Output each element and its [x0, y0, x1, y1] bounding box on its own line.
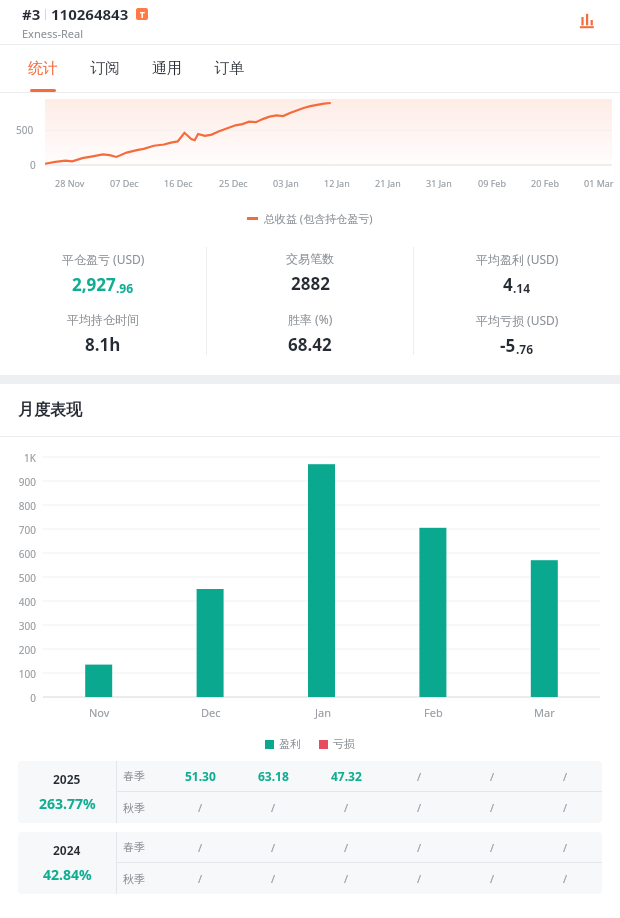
staticText: 21 Jan	[375, 177, 401, 189]
staticText: /	[344, 800, 349, 815]
staticText: 800	[18, 499, 36, 513]
staticText: 28 Nov	[55, 177, 85, 189]
staticText: /	[344, 871, 349, 886]
staticText: 03 Jan	[273, 177, 299, 189]
staticText: 500	[16, 123, 34, 137]
staticText: Nov	[89, 705, 110, 720]
staticText: T	[140, 9, 145, 20]
staticText: 42.84%	[43, 865, 92, 884]
staticText: 2,927	[72, 273, 116, 296]
staticText: 263.77%	[39, 794, 96, 813]
staticText: 2882	[291, 272, 330, 295]
button[interactable]: 2024	[18, 832, 602, 894]
staticText: /	[271, 800, 276, 815]
staticText: 51.30	[185, 768, 216, 784]
staticText: .96	[116, 280, 134, 296]
staticText: 盈利	[279, 737, 301, 751]
staticText: 交易笔数	[286, 251, 334, 266]
staticText: 100	[18, 667, 36, 681]
staticText: Feb	[424, 705, 443, 720]
staticText: /	[490, 800, 495, 815]
staticText: 平均盈利 (USD)	[476, 251, 559, 267]
staticText: 01 Mar	[584, 177, 614, 189]
staticText: 2024	[53, 842, 81, 858]
staticText: .14	[513, 280, 531, 296]
staticText: 平仓盈亏 (USD)	[62, 251, 145, 267]
button[interactable]: 通用	[136, 45, 198, 92]
staticText: Jan	[315, 705, 331, 720]
staticText: /	[417, 871, 422, 886]
staticText: /	[563, 800, 568, 815]
staticText: /	[490, 769, 495, 784]
staticText: 通用	[152, 59, 182, 78]
staticText: 秋季	[123, 801, 145, 815]
staticText: 订单	[214, 59, 244, 78]
staticText: 0	[30, 691, 36, 705]
button[interactable]: Chart view	[572, 6, 602, 36]
button[interactable]: 订阅	[74, 45, 136, 92]
button[interactable]: 订单	[198, 45, 260, 92]
staticText: /	[563, 769, 568, 784]
staticText: 平均持仓时间	[67, 312, 139, 327]
staticText: 500	[18, 571, 36, 585]
staticText: /	[198, 840, 203, 855]
staticText: 12 Jan	[324, 177, 350, 189]
staticText: 07 Dec	[110, 177, 139, 189]
staticText: 63.18	[258, 768, 289, 784]
staticText: 600	[18, 547, 36, 561]
staticText: -5	[500, 334, 516, 357]
staticText: 200	[18, 643, 36, 657]
staticText: 900	[18, 475, 36, 489]
staticText: 统计	[28, 59, 58, 78]
staticText: 胜率 (%)	[288, 311, 333, 327]
staticText: 8.1h	[85, 333, 121, 356]
staticText: /	[490, 871, 495, 886]
button[interactable]: 2025	[18, 761, 602, 823]
staticText: /	[344, 840, 349, 855]
staticText: 4	[503, 273, 513, 296]
staticText: 月度表现	[18, 400, 82, 420]
staticText: 20 Feb	[531, 177, 559, 189]
staticText: /	[198, 871, 203, 886]
staticText: /	[198, 800, 203, 815]
staticText: /	[417, 800, 422, 815]
staticText: 09 Feb	[478, 177, 506, 189]
staticText: #3	[22, 4, 41, 24]
staticText: 春季	[123, 769, 145, 783]
staticText: /	[417, 769, 422, 784]
staticText: 25 Dec	[219, 177, 248, 189]
staticText: 16 Dec	[164, 177, 193, 189]
staticText: 68.42	[288, 333, 332, 356]
staticText: 1K	[24, 451, 36, 465]
staticText: /	[271, 871, 276, 886]
staticText: 300	[18, 619, 36, 633]
staticText: /	[490, 840, 495, 855]
staticText: Dec	[201, 705, 221, 720]
staticText: 亏损	[333, 737, 355, 751]
staticText: 47.32	[331, 768, 362, 784]
staticText: 700	[18, 523, 36, 537]
staticText: 31 Jan	[426, 177, 452, 189]
button[interactable]: 统计	[12, 45, 74, 92]
staticText: /	[417, 840, 422, 855]
staticText: /	[271, 840, 276, 855]
staticText: Exness-Real	[22, 26, 84, 41]
staticText: 平均亏损 (USD)	[476, 312, 559, 328]
staticText: /	[563, 871, 568, 886]
staticText: /	[563, 840, 568, 855]
staticText: 订阅	[90, 59, 120, 78]
staticText: Mar	[534, 705, 555, 720]
staticText: 0	[30, 158, 36, 172]
staticText: 春季	[123, 840, 145, 854]
staticText: 总收益 (包含持仓盈亏)	[264, 211, 373, 226]
staticText: 2025	[53, 771, 81, 787]
staticText: 400	[18, 595, 36, 609]
staticText: .76	[516, 341, 534, 357]
staticText: 110264843	[51, 4, 129, 24]
staticText: 秋季	[123, 872, 145, 886]
